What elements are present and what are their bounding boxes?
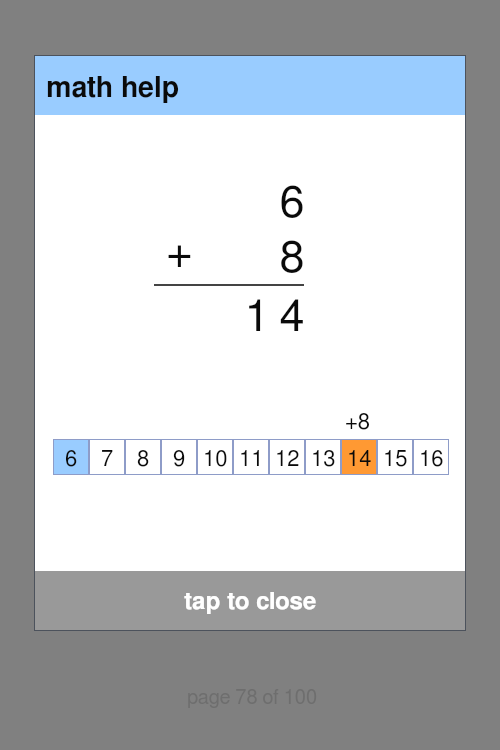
button[interactable]: 13	[305, 439, 341, 475]
other: Number line from 6 to 16	[53, 439, 449, 475]
staticText: 8	[137, 448, 150, 470]
staticText: 10	[203, 448, 228, 470]
button[interactable]: 7	[89, 439, 125, 475]
staticText: 13	[311, 448, 336, 470]
staticText: 16	[419, 448, 444, 470]
staticText: 12	[275, 448, 300, 470]
staticText: 1	[244, 295, 270, 340]
staticText: 14	[347, 448, 372, 470]
button[interactable]: tap to close	[35, 571, 465, 630]
button[interactable]: 11	[233, 439, 269, 475]
staticText: 4	[279, 295, 305, 340]
button[interactable]: 6	[53, 439, 89, 475]
staticText: +	[166, 231, 193, 276]
staticText: 6	[65, 448, 78, 470]
staticText: +8	[345, 411, 371, 433]
staticText: tap to close	[184, 590, 317, 614]
staticText: 7	[101, 448, 114, 470]
button[interactable]: 9	[161, 439, 197, 475]
staticText: 8	[279, 236, 305, 281]
button[interactable]: 15	[377, 439, 413, 475]
staticText: page 78 of 100	[187, 688, 318, 708]
button[interactable]: 16	[413, 439, 449, 475]
staticText: 15	[383, 448, 408, 470]
button[interactable]: 14	[341, 439, 377, 475]
staticText: 6	[279, 181, 305, 226]
staticText: math help	[46, 74, 180, 103]
button[interactable]: math help	[35, 56, 465, 115]
button[interactable]: 8	[125, 439, 161, 475]
button[interactable]: 12	[269, 439, 305, 475]
staticText: 11	[239, 448, 264, 470]
staticText: 9	[173, 448, 186, 470]
button[interactable]: 10	[197, 439, 233, 475]
